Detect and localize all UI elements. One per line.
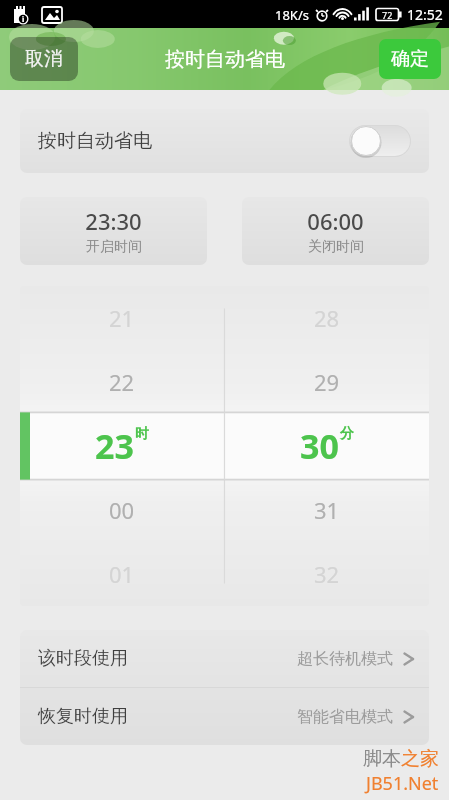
staticText: 按时自动省电 [38,129,152,153]
staticText: 06:00 [307,206,364,236]
staticText: 该时段使用 [38,647,128,670]
button[interactable]: 按时自动省电 [20,109,429,173]
staticText: 分 [340,425,354,443]
staticText: 22 [109,367,135,397]
staticText: 关闭时间 [308,238,364,256]
button[interactable]: 取消 [10,37,78,81]
staticText: 30 [300,423,339,469]
staticText: 按时自动省电 [165,47,285,72]
staticText: JB51.Net [366,771,439,796]
staticText: 23:30 [85,206,142,236]
staticText: 脚本 [363,747,401,771]
staticText: 31 [314,495,340,525]
staticText: 28 [314,303,340,333]
button[interactable]: 28 [224,286,429,606]
staticText: 恢复时使用 [38,705,128,728]
staticText: 取消 [25,47,63,71]
staticText: 时 [135,425,149,443]
staticText: 开启时间 [86,238,142,256]
button[interactable]: 该时段使用 [20,630,429,687]
staticText: 32 [314,559,340,589]
staticText: 12:52 [407,5,443,24]
staticText: 23 [95,423,134,469]
staticText: 确定 [391,47,429,71]
staticText: 00 [109,495,135,525]
staticText: 超长待机模式 [297,649,393,669]
button[interactable]: 21 [20,286,224,606]
staticText: 29 [314,367,340,397]
staticText: 智能省电模式 [297,707,393,727]
staticText: 之家 [401,747,439,771]
staticText: 21 [109,303,135,333]
button[interactable]: 恢复时使用 [20,688,429,745]
button[interactable]: 确定 [379,39,441,79]
button[interactable]: 23:30 [20,197,207,265]
staticText: 01 [109,559,135,589]
staticText: 18K/s [275,6,309,24]
staticText: 72 [382,9,393,21]
button[interactable]: 06:00 [242,197,429,265]
